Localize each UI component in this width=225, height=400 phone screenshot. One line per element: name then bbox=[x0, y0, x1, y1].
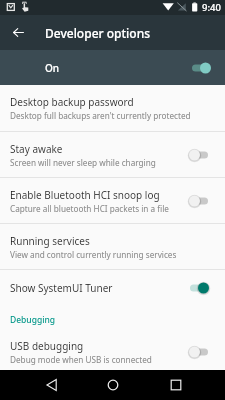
staticText: Debugging bbox=[10, 314, 56, 326]
staticText: Capture all bluetooth HCI packets in a f… bbox=[10, 203, 169, 214]
button[interactable]: Home bbox=[104, 370, 121, 400]
button[interactable]: Running services bbox=[0, 224, 225, 269]
button[interactable]: Back bbox=[0, 370, 104, 400]
staticText: Screen will never sleep while charging bbox=[10, 157, 156, 168]
staticText: On bbox=[45, 61, 60, 75]
button[interactable]: USB debugging bbox=[0, 334, 225, 370]
button[interactable]: Recent apps bbox=[121, 370, 225, 400]
staticText: Debug mode when USB is connected bbox=[10, 354, 152, 365]
staticText: 9:40 bbox=[202, 1, 221, 14]
staticText: Enable Bluetooth HCI snoop log bbox=[10, 188, 160, 202]
button[interactable]: Desktop backup password bbox=[0, 85, 225, 131]
staticText: Running services bbox=[10, 234, 90, 248]
button[interactable]: Navigate up bbox=[0, 15, 36, 50]
staticText: Stay awake bbox=[10, 142, 63, 156]
staticText: Show SystemUI Tuner bbox=[10, 281, 113, 295]
button[interactable]: Stay awake bbox=[0, 132, 225, 177]
button[interactable]: Show SystemUI Tuner bbox=[0, 270, 225, 306]
staticText: USB debugging bbox=[10, 339, 84, 353]
button[interactable]: On bbox=[0, 50, 225, 85]
staticText: Developer options bbox=[45, 25, 151, 41]
button[interactable]: Enable Bluetooth HCI snoop log bbox=[0, 178, 225, 223]
staticText: Desktop backup password bbox=[10, 95, 134, 109]
staticText: Desktop full backups aren't currently pr… bbox=[10, 110, 191, 121]
staticText: View and control currently running servi… bbox=[10, 249, 177, 260]
